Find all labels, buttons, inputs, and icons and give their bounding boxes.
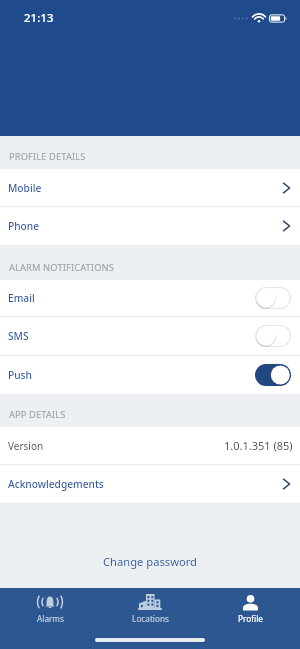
staticText: Email	[8, 291, 35, 305]
staticText: SMS	[8, 329, 29, 343]
staticText: Phone	[8, 219, 40, 233]
staticText: Mobile	[8, 181, 42, 195]
button[interactable]: Disabled	[255, 325, 291, 347]
button[interactable]: Alarms	[0, 588, 100, 633]
staticText: ALARM NOTIFICATIONS	[9, 261, 114, 274]
staticText: Locations	[132, 613, 169, 624]
staticText: Acknowledgements	[8, 477, 104, 491]
staticText: Change password	[103, 554, 197, 569]
staticText: 1.0.1.351 (85)	[224, 438, 293, 453]
staticText: Version	[8, 439, 44, 453]
staticText: Push	[8, 368, 32, 382]
button[interactable]: Mobile	[0, 169, 300, 207]
button[interactable]: Acknowledgements	[0, 465, 300, 504]
staticText: APP DETAILS	[9, 408, 66, 421]
button[interactable]: Disabled	[255, 287, 291, 309]
button[interactable]: Change password	[103, 554, 197, 569]
button[interactable]: Enabled	[255, 364, 291, 386]
staticText: PROFILE DETAILS	[9, 150, 86, 163]
button[interactable]: Phone	[0, 207, 300, 246]
staticText: Profile	[238, 613, 263, 624]
staticText: 21:13	[24, 10, 54, 25]
staticText: Alarms	[37, 613, 64, 624]
button[interactable]: Locations	[100, 588, 200, 633]
button[interactable]: Profile	[200, 588, 300, 633]
